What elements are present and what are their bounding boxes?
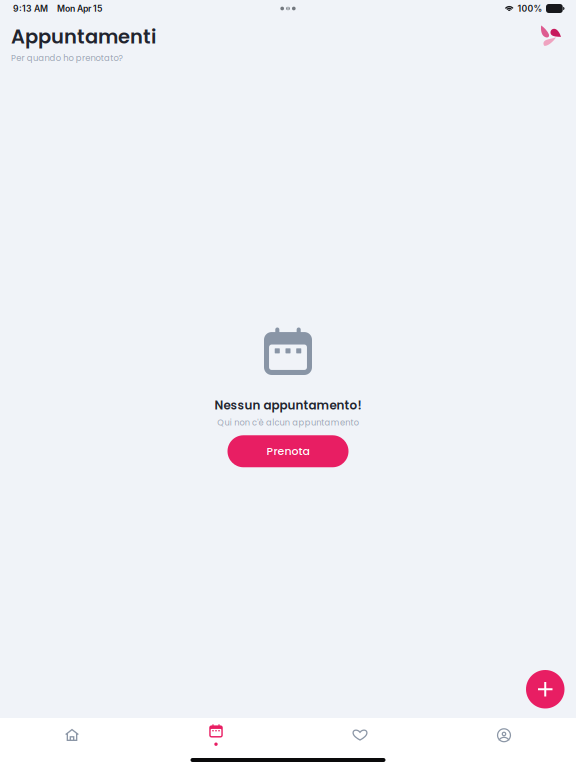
staticText: Prenota bbox=[266, 444, 309, 459]
staticText: Nessun appuntamento! bbox=[214, 397, 361, 414]
staticText: Mon Apr 15 bbox=[57, 3, 102, 14]
button[interactable]: Preferiti bbox=[288, 718, 432, 754]
staticText: Per quando ho prenotato? bbox=[11, 52, 123, 64]
staticText: Qui non c'è alcun appuntamento bbox=[217, 417, 359, 428]
button[interactable]: Prenota bbox=[227, 435, 348, 467]
button[interactable]: Profilo bbox=[432, 718, 576, 754]
staticText: Appuntamenti bbox=[11, 23, 156, 50]
staticText: 100% bbox=[517, 3, 542, 14]
button[interactable]: Appuntamenti bbox=[144, 718, 288, 754]
staticText: 9:13 AM bbox=[13, 3, 48, 14]
button[interactable]: Nuovo appuntamento bbox=[526, 670, 564, 708]
button[interactable]: Home bbox=[0, 718, 144, 754]
